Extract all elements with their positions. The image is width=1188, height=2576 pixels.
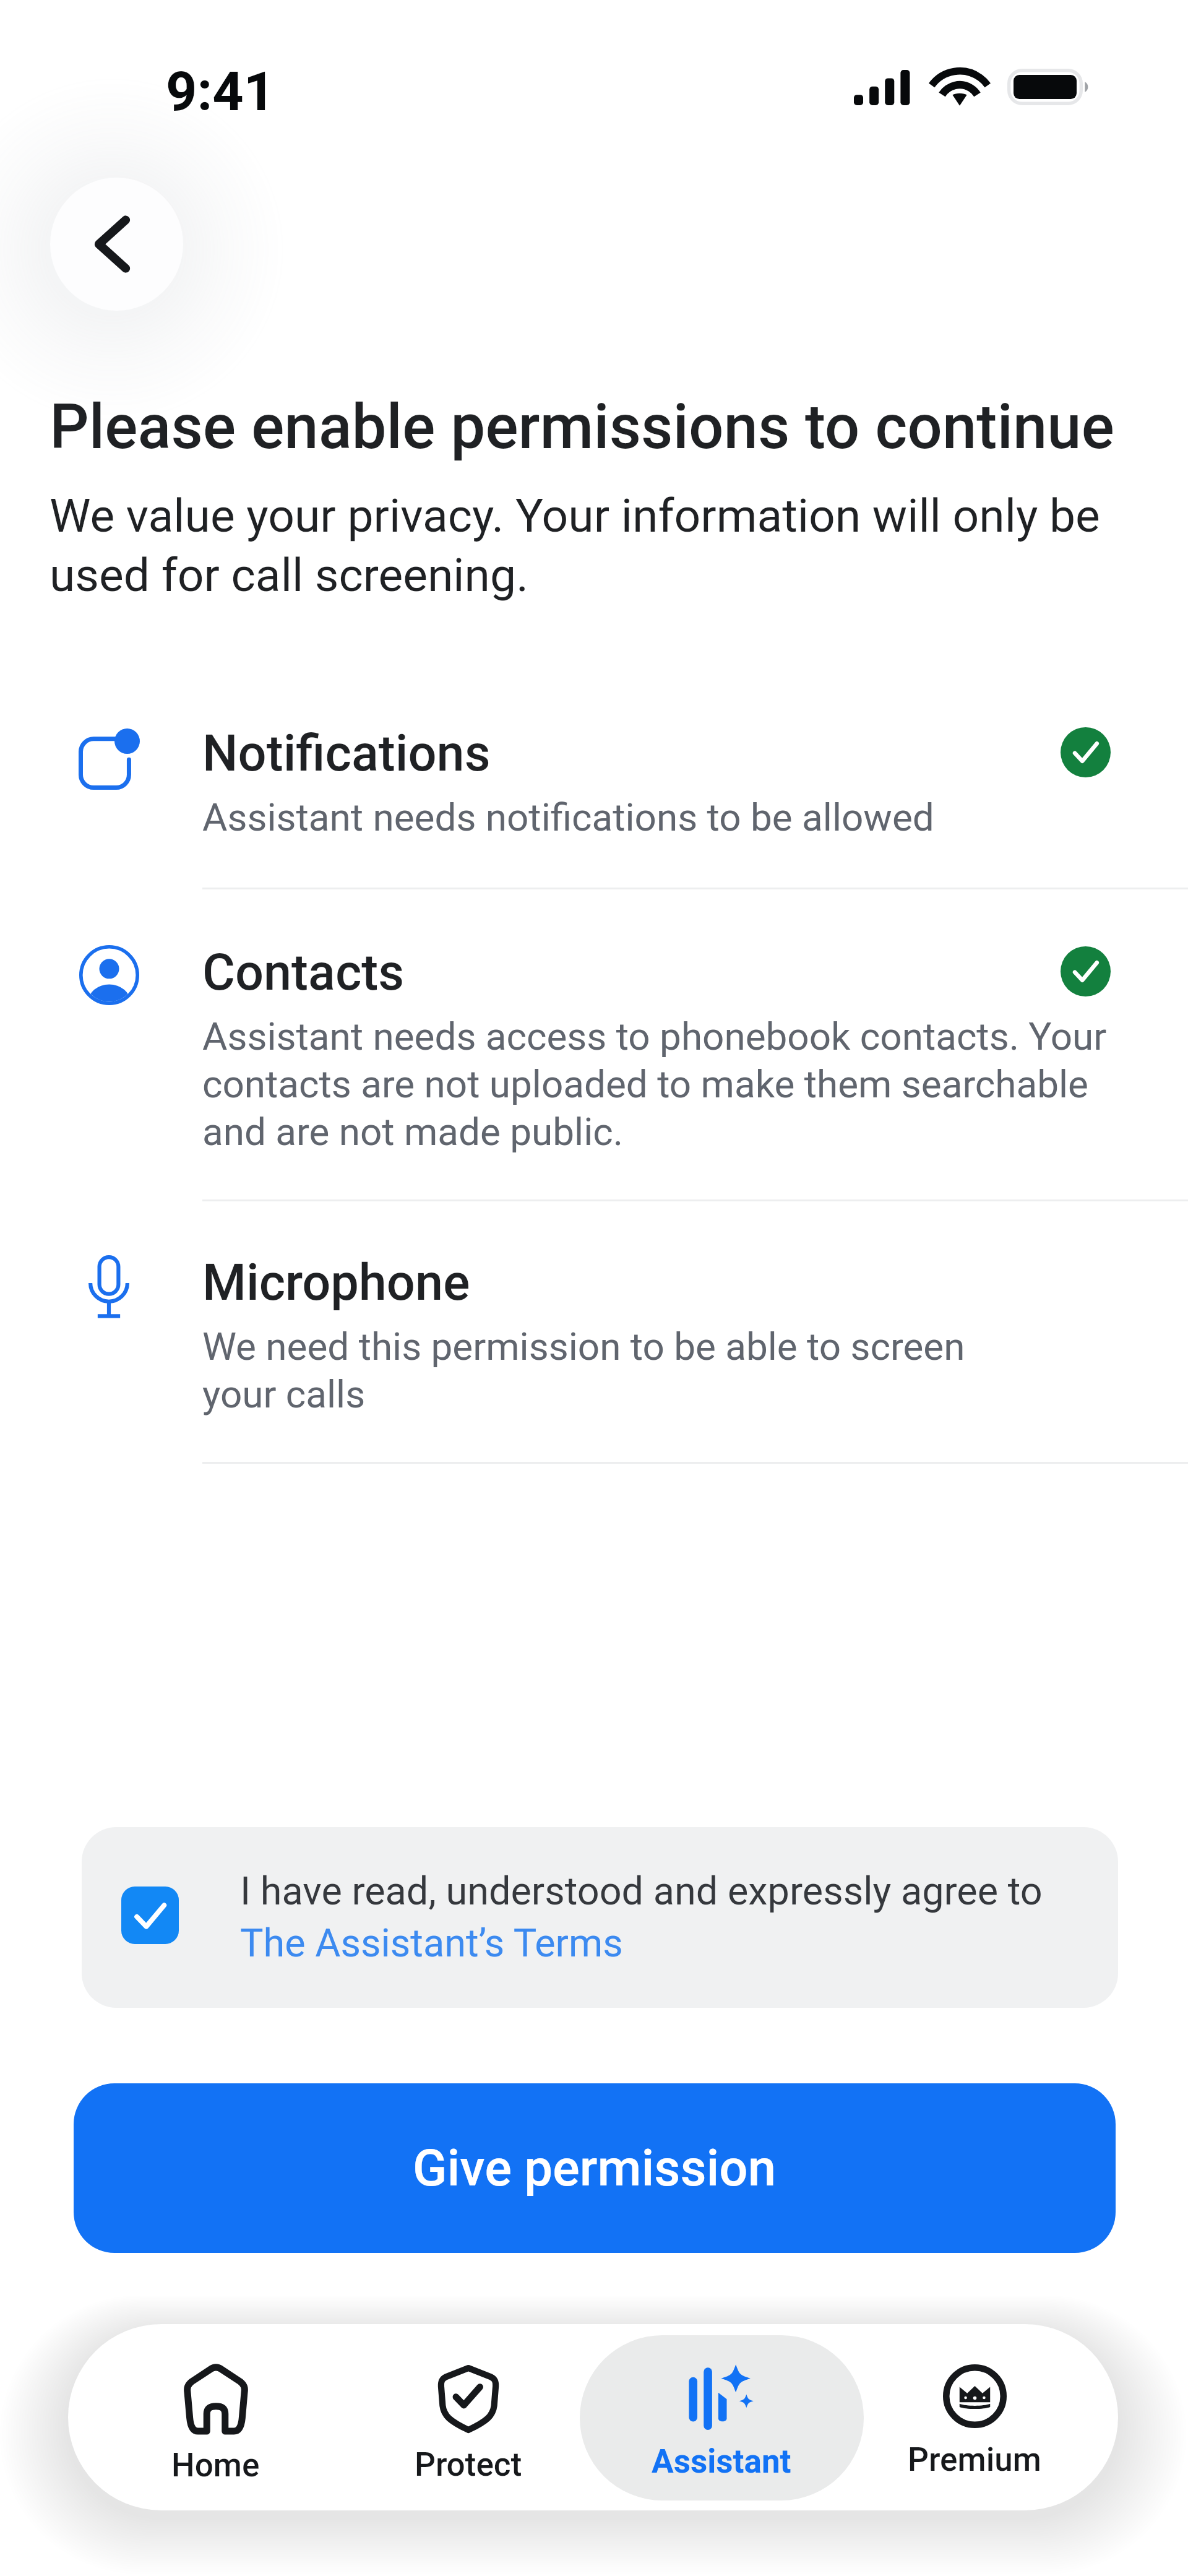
staticText: Protect: [415, 2445, 522, 2484]
staticText: Give permission: [413, 2138, 777, 2198]
staticText: 9:41: [166, 59, 275, 123]
staticText: I have read, understood and expressly ag…: [240, 1863, 1118, 1967]
staticText: Home: [171, 2446, 260, 2484]
button[interactable]: [68, 1232, 1120, 1462]
staticText: We value your privacy. Your information …: [49, 485, 1126, 603]
staticText: Microphone: [202, 1251, 470, 1312]
staticText: Assistant: [652, 2442, 791, 2481]
staticText: We need this permission to be able to sc…: [202, 1322, 965, 1417]
button[interactable]: I have read, understood and expressly ag…: [82, 1827, 1118, 2008]
staticText: Assistant needs access to phonebook cont…: [202, 1012, 1107, 1155]
staticText: Premium: [908, 2440, 1041, 2479]
button[interactable]: [68, 916, 1120, 1199]
button[interactable]: Back: [50, 178, 183, 311]
staticText: Contacts: [202, 941, 405, 1002]
button[interactable]: Premium: [848, 2335, 1101, 2500]
staticText: Please enable permissions to continue: [49, 391, 1114, 464]
button[interactable]: Protect: [342, 2335, 595, 2500]
button[interactable]: Give permission: [74, 2083, 1116, 2253]
button[interactable]: [68, 706, 1120, 888]
staticText: Assistant needs notifications to be allo…: [202, 793, 934, 841]
button[interactable]: Home: [88, 2335, 342, 2500]
staticText: Notifications: [202, 722, 491, 783]
button[interactable]: Assistant: [595, 2335, 848, 2500]
